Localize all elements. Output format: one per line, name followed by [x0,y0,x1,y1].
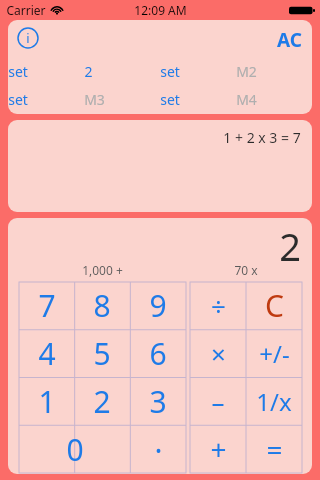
button[interactable]: Info [17,27,39,49]
staticText: ÷ [211,288,226,323]
button[interactable]: M4 [236,88,257,110]
staticText: set [8,90,28,109]
button[interactable]: 1 [19,377,74,425]
button[interactable]: . [130,425,186,473]
staticText: AC [277,27,302,53]
staticText: 5 [93,333,111,374]
staticText: = [266,430,283,468]
staticText: i [26,29,30,47]
staticText: M4 [236,90,257,109]
staticText: 0 [66,429,84,470]
staticText: set [160,62,180,81]
staticText: + [210,430,227,468]
staticText: 4 [38,333,56,374]
staticText: C [265,285,284,326]
staticText: +/- [259,337,290,370]
staticText: 6 [149,333,167,374]
button[interactable]: C [246,282,302,329]
button[interactable]: M3 [84,88,105,110]
button[interactable]: set [160,88,180,110]
staticText: . [154,421,163,462]
staticText: 1/x [256,385,292,418]
button[interactable]: ÷ [190,282,246,329]
staticText: 70 x [234,262,258,278]
staticText: 1 [38,381,56,422]
staticText: 8 [93,285,111,326]
button[interactable]: set [160,60,180,82]
button[interactable]: set [8,60,28,82]
staticText: 9 [149,285,167,326]
staticText: 3 [149,381,167,422]
staticText: set [8,62,28,81]
button[interactable]: – [190,377,246,425]
button[interactable]: AC [273,25,306,55]
staticText: 7 [38,285,56,326]
staticText: 2 [84,62,93,81]
staticText: M3 [84,90,105,109]
button[interactable]: +/- [246,329,302,377]
button[interactable]: 5 [74,329,130,377]
button[interactable]: 2 [84,60,93,82]
staticText: set [160,90,180,109]
button[interactable]: 3 [130,377,186,425]
staticText: 1,000 + [82,262,123,278]
button[interactable]: 8 [74,282,130,329]
staticText: × [211,336,226,371]
staticText: 12:09 AM [134,2,187,18]
staticText: 2 [93,381,111,422]
button[interactable]: 4 [19,329,74,377]
button[interactable]: 1 + 2 x 3 = 7 [8,120,312,212]
button[interactable]: + [190,425,246,473]
button[interactable]: × [190,329,246,377]
button[interactable]: 6 [130,329,186,377]
button[interactable]: 9 [130,282,186,329]
staticText: Carrier [6,2,46,18]
button[interactable]: 1/x [246,377,302,425]
button[interactable]: M2 [236,60,257,82]
staticText: 1 + 2 x 3 = 7 [223,128,301,147]
button[interactable]: 2 [74,377,130,425]
staticText: M2 [236,62,257,81]
button[interactable]: set [8,88,28,110]
button[interactable]: 7 [19,282,74,329]
button[interactable]: 0 [19,425,130,473]
button[interactable]: = [246,425,302,473]
staticText: – [211,384,225,419]
staticText: 2 [279,220,301,272]
